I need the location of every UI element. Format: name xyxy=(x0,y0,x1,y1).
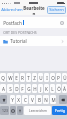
button[interactable]: A xyxy=(0,84,6,93)
staticText: L xyxy=(51,86,54,92)
button[interactable]: Abbrechen xyxy=(0,5,23,15)
staticText: 123 xyxy=(2,108,8,113)
button[interactable]: Sichern xyxy=(47,6,66,14)
button[interactable]: R xyxy=(20,73,25,82)
staticText: Postfach xyxy=(3,20,22,26)
button[interactable]: T xyxy=(26,73,31,82)
button[interactable]: Ü xyxy=(62,73,67,82)
staticText: Sichern xyxy=(49,7,64,13)
staticText: Bearbeiten xyxy=(23,5,45,15)
button[interactable]: X xyxy=(16,95,21,104)
staticText: C xyxy=(24,97,27,103)
button[interactable]: L xyxy=(50,84,55,93)
button[interactable]: D xyxy=(14,84,19,93)
staticText: Y xyxy=(11,97,14,103)
button[interactable]: M xyxy=(50,95,56,104)
button[interactable]: F xyxy=(20,84,25,93)
staticText: M xyxy=(51,97,56,103)
button[interactable]: K xyxy=(44,84,49,93)
button[interactable]: Backspace xyxy=(59,95,67,104)
staticText: A xyxy=(2,86,5,92)
button[interactable]: Dictate xyxy=(17,106,23,115)
staticText: Tutorial xyxy=(10,38,27,44)
button[interactable]: 123 xyxy=(0,106,9,115)
staticText: K xyxy=(45,86,48,92)
staticText: B xyxy=(38,97,41,103)
button[interactable]: J xyxy=(38,84,43,93)
staticText: Q xyxy=(1,75,5,81)
button[interactable]: B xyxy=(36,95,42,104)
staticText: I xyxy=(46,75,48,81)
staticText: X xyxy=(17,97,20,103)
button[interactable]: Clear text xyxy=(59,20,64,25)
staticText: E xyxy=(15,75,18,81)
staticText: G xyxy=(27,86,31,92)
button[interactable]: E xyxy=(14,73,19,82)
button[interactable]: Shift xyxy=(0,95,7,104)
staticText: T xyxy=(27,75,30,81)
staticText: Abbrechen xyxy=(1,7,23,13)
staticText: N xyxy=(44,97,48,103)
staticText: Z xyxy=(33,75,36,81)
button[interactable]: Change keyboard language xyxy=(10,106,16,115)
staticText: R xyxy=(21,75,24,81)
staticText: S xyxy=(9,86,12,92)
staticText: Ö xyxy=(57,86,61,92)
staticText: Ü xyxy=(63,75,67,81)
button[interactable]: Z xyxy=(32,73,37,82)
staticText: O xyxy=(51,75,55,81)
button[interactable]: Leerzeichen xyxy=(24,106,51,115)
button[interactable]: N xyxy=(43,95,49,104)
staticText: ORT DES POSTFACHS xyxy=(3,30,37,35)
staticText: F xyxy=(21,86,24,92)
staticText: H xyxy=(33,86,37,92)
staticText: J xyxy=(40,86,42,92)
button[interactable]: P xyxy=(56,73,61,82)
staticText: V xyxy=(31,97,34,103)
button[interactable]: Fertig xyxy=(52,106,67,115)
button[interactable]: O xyxy=(50,73,55,82)
button[interactable]: Y xyxy=(10,95,15,104)
staticText: P xyxy=(57,75,60,81)
staticText: W xyxy=(8,75,13,81)
staticText: D xyxy=(15,86,19,92)
button[interactable]: W xyxy=(7,73,13,82)
button[interactable]: I xyxy=(44,73,49,82)
button[interactable]: Q xyxy=(0,73,6,82)
button[interactable]: Postfach xyxy=(0,17,67,28)
button[interactable]: H xyxy=(32,84,37,93)
button[interactable]: Ä xyxy=(62,84,67,93)
staticText: Leerzeichen xyxy=(29,109,47,113)
button[interactable]: G xyxy=(26,84,31,93)
staticText: Fertig xyxy=(55,108,65,113)
staticText: U xyxy=(39,75,43,81)
button[interactable]: V xyxy=(29,95,35,104)
staticText: Ä xyxy=(63,86,66,92)
button[interactable]: U xyxy=(38,73,43,82)
button[interactable]: C xyxy=(22,95,28,104)
button[interactable]: Ö xyxy=(56,84,61,93)
button[interactable]: Tutorial xyxy=(0,36,67,46)
button[interactable]: S xyxy=(7,84,13,93)
